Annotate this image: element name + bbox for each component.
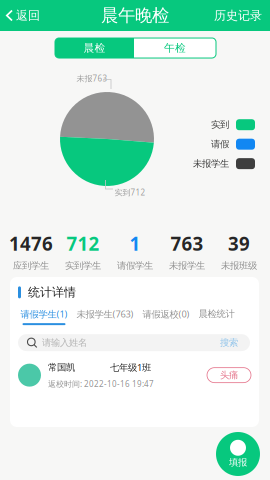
staticText: 搜索 bbox=[220, 337, 238, 348]
staticText: 未报班级 bbox=[221, 260, 257, 271]
staticText: 七年级1班 bbox=[110, 361, 151, 373]
staticText: 未报学生 bbox=[193, 158, 229, 169]
button[interactable]: 午检 bbox=[134, 38, 216, 58]
staticText: 午检 bbox=[164, 41, 186, 54]
staticText: 请假学生(1) bbox=[20, 308, 67, 320]
staticText: 39 bbox=[228, 231, 250, 256]
button[interactable]: 请假学生(1) bbox=[19, 308, 69, 325]
staticText: 1 bbox=[129, 231, 140, 256]
button[interactable]: 填报 bbox=[216, 432, 260, 476]
staticText: 晨检统计 bbox=[198, 308, 234, 320]
staticText: 填报 bbox=[229, 457, 247, 468]
button[interactable]: 晨检 bbox=[55, 38, 134, 58]
staticText: 返回 bbox=[16, 8, 40, 23]
staticText: 未报学生(763) bbox=[76, 308, 133, 320]
button[interactable]: 返回 bbox=[0, 0, 60, 31]
staticText: 712 bbox=[66, 231, 99, 256]
staticText: 请假返校(0) bbox=[142, 308, 189, 320]
button[interactable]: 历史记录 bbox=[206, 0, 270, 31]
staticText: 实到学生 bbox=[65, 260, 101, 271]
staticText: 晨午晚检 bbox=[101, 5, 169, 26]
staticText: 晨检 bbox=[83, 41, 105, 54]
staticText: 实到712 bbox=[114, 187, 145, 198]
staticText: 请输入姓名 bbox=[42, 337, 87, 348]
staticText: 应到学生 bbox=[13, 260, 49, 271]
staticText: 请假学生 bbox=[117, 260, 153, 271]
button[interactable]: 头痛 bbox=[207, 368, 251, 383]
staticText: 请假 bbox=[211, 138, 229, 150]
button[interactable]: 请假返校(0) bbox=[141, 308, 191, 325]
button[interactable]: 晨检统计 bbox=[197, 308, 236, 325]
staticText: 统计详情 bbox=[28, 285, 76, 300]
staticText: 1476 bbox=[9, 231, 53, 256]
staticText: 未报学生 bbox=[169, 260, 205, 271]
button[interactable]: 搜索 bbox=[219, 337, 239, 348]
staticText: 763 bbox=[170, 231, 203, 256]
staticText: 历史记录 bbox=[214, 8, 262, 23]
staticText: 头痛 bbox=[220, 369, 238, 381]
staticText: 返校时间: 2022-10-16 19:47 bbox=[48, 378, 154, 389]
button[interactable]: 未报学生(763) bbox=[75, 308, 135, 325]
staticText: 常国凯 bbox=[48, 362, 75, 373]
staticText: 实到 bbox=[211, 119, 229, 130]
staticText: 未报763 bbox=[76, 73, 107, 84]
